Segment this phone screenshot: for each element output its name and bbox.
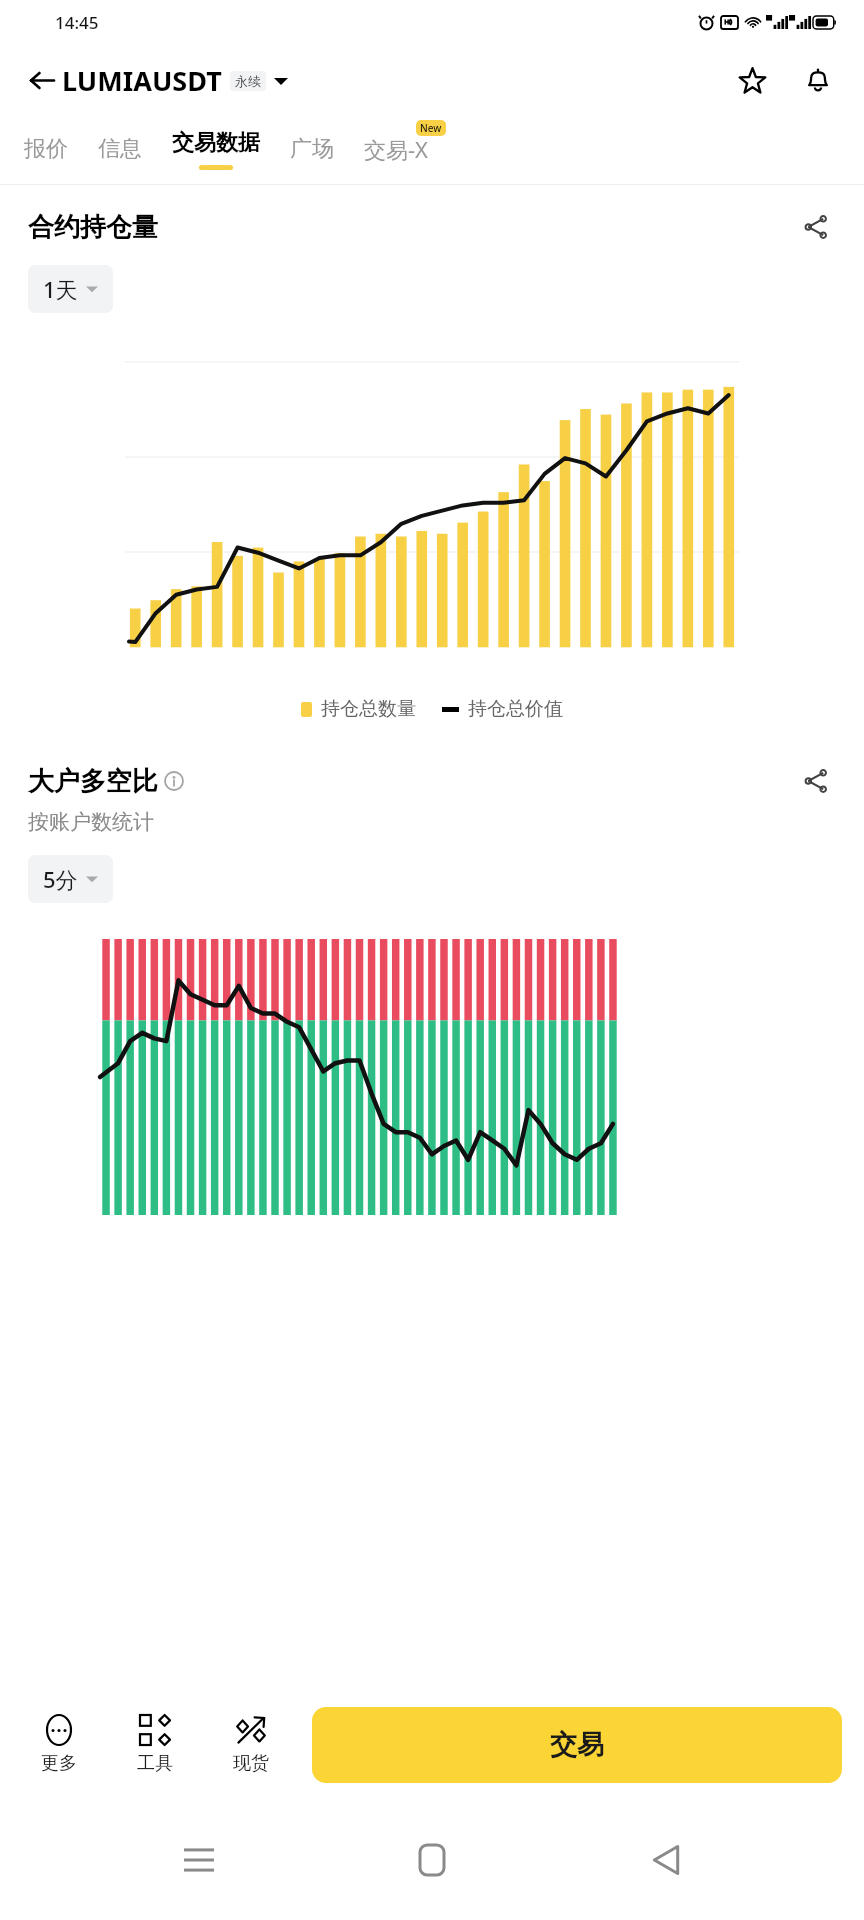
staticText: 永续 <box>235 73 261 89</box>
button[interactable]: 5分 <box>28 855 113 903</box>
button[interactable]: 现货 <box>214 1711 288 1779</box>
button[interactable]: 1天 <box>28 265 113 313</box>
staticText: 更多 <box>41 1752 77 1775</box>
button[interactable]: 报价 <box>24 135 68 163</box>
button[interactable]: 广场 <box>290 135 334 163</box>
staticText: 现货 <box>233 1752 269 1775</box>
button[interactable]: Back <box>631 1825 701 1895</box>
button[interactable]: Share <box>796 761 836 801</box>
staticText: LUMIAUSDT <box>62 62 222 99</box>
staticText: 工具 <box>137 1752 173 1775</box>
staticText: 持仓总价值 <box>468 697 563 721</box>
button[interactable]: Recents <box>164 1825 234 1895</box>
button[interactable]: 交易数据 <box>172 129 260 157</box>
staticText: 大户多空比 <box>28 765 158 798</box>
staticText: 交易 <box>550 1728 604 1762</box>
button[interactable]: 工具 <box>118 1711 192 1779</box>
button[interactable]: 交易 <box>312 1707 842 1783</box>
button[interactable]: 信息 <box>98 135 142 163</box>
staticText: 14:45 <box>55 11 99 34</box>
staticText: 持仓总数量 <box>321 697 416 721</box>
button[interactable]: 交易-X <box>364 134 428 164</box>
staticText: New <box>420 121 442 135</box>
staticText: 1天 <box>43 274 78 304</box>
staticText: 合约持仓量 <box>28 211 158 244</box>
button[interactable]: 更多 <box>22 1711 96 1779</box>
staticText: 按账户数统计 <box>28 809 154 835</box>
staticText: 5分 <box>43 864 78 894</box>
button[interactable]: Favorite <box>728 56 776 104</box>
button[interactable]: Home <box>397 1825 467 1895</box>
button[interactable]: Notifications <box>794 56 842 104</box>
button[interactable]: Share <box>796 207 836 247</box>
button[interactable]: Back <box>18 57 64 103</box>
